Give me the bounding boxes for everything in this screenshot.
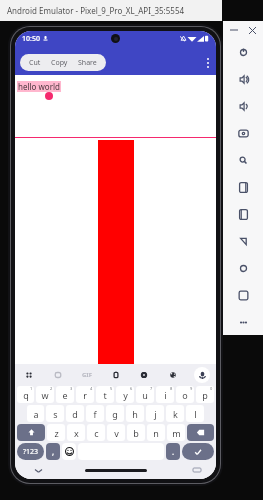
button[interactable]: n — [147, 424, 165, 441]
button[interactable]: Cut — [24, 56, 46, 70]
button[interactable]: More — [223, 309, 263, 335]
staticText: 8 — [170, 386, 173, 391]
button[interactable]: i — [156, 386, 174, 403]
button[interactable]: Rotate right — [223, 201, 263, 228]
button[interactable]: More options — [207, 58, 209, 68]
button[interactable]: h — [126, 405, 144, 422]
button[interactable]: x — [67, 424, 85, 441]
button[interactable]: Theme — [165, 367, 181, 383]
staticText: 7 — [150, 386, 153, 391]
staticText: Android Emulator - Pixel_9_Pro_XL_API_35… — [7, 5, 185, 16]
staticText: l — [194, 408, 197, 420]
button[interactable]: Settings — [136, 367, 152, 383]
button[interactable]: a — [27, 405, 44, 422]
button[interactable]: Emoji — [62, 443, 76, 460]
staticText: 4 — [90, 386, 93, 391]
staticText: k — [173, 408, 178, 420]
button[interactable]: Back — [223, 228, 263, 255]
button[interactable]: Switch keyboard — [192, 465, 202, 475]
staticText: Copy — [51, 58, 68, 68]
button[interactable]: m — [167, 424, 185, 441]
button[interactable]: k — [166, 405, 184, 422]
staticText: 5 — [110, 386, 113, 391]
staticText: f — [93, 408, 97, 420]
button[interactable]: l — [186, 405, 204, 422]
staticText: Share — [78, 58, 97, 68]
staticText: 2 — [50, 386, 53, 391]
staticText: p — [202, 389, 208, 401]
button[interactable]: Copy — [46, 56, 73, 70]
button[interactable]: f — [86, 405, 104, 422]
button[interactable]: Take screenshot — [223, 120, 263, 147]
staticText: o — [182, 389, 188, 401]
staticText: 3 — [70, 386, 73, 391]
staticText: . — [172, 446, 175, 457]
button[interactable]: Minimize — [228, 24, 240, 36]
staticText: , — [52, 446, 55, 457]
button[interactable]: Home — [223, 255, 263, 282]
button[interactable]: d — [66, 405, 84, 422]
button[interactable]: ?123 — [17, 443, 44, 460]
button[interactable]: b — [127, 424, 145, 441]
button[interactable]: j — [146, 405, 164, 422]
staticText: g — [112, 408, 118, 420]
button[interactable]: y — [116, 386, 134, 403]
staticText: q — [23, 389, 29, 401]
button[interactable]: Enter — [182, 443, 214, 460]
button[interactable]: Rotate left — [223, 174, 263, 201]
button[interactable]: Clipboard — [108, 367, 124, 383]
button[interactable]: Volume up — [223, 66, 263, 93]
button[interactable]: , — [46, 443, 60, 460]
button[interactable]: s — [46, 405, 64, 422]
staticText: h — [132, 408, 138, 420]
button[interactable]: . — [166, 443, 180, 460]
button[interactable]: u — [136, 386, 154, 403]
button[interactable]: Zoom — [223, 147, 263, 174]
staticText: 1 — [30, 386, 33, 391]
staticText: GIF — [82, 371, 92, 379]
button[interactable]: o — [176, 386, 194, 403]
button[interactable]: Share — [73, 56, 102, 70]
button[interactable]: Hide keyboard — [33, 465, 43, 475]
button[interactable]: p — [196, 386, 214, 403]
button[interactable]: Selection handle — [45, 92, 53, 100]
staticText: v — [114, 427, 119, 439]
button[interactable]: Backspace — [187, 424, 214, 441]
button[interactable]: Close — [246, 24, 258, 36]
staticText: u — [142, 389, 148, 401]
button[interactable]: GIF — [79, 367, 95, 383]
button[interactable]: Overview — [223, 282, 263, 309]
staticText: r — [83, 389, 87, 401]
button[interactable]: Power — [223, 39, 263, 66]
staticText: y — [123, 389, 128, 401]
button[interactable]: r — [76, 386, 94, 403]
staticText: b — [133, 427, 139, 439]
button[interactable]: w — [36, 386, 54, 403]
button[interactable]: v — [107, 424, 125, 441]
staticText: 9 — [190, 386, 193, 391]
button[interactable]: g — [106, 405, 124, 422]
staticText: c — [94, 427, 99, 439]
staticText: hello world — [18, 81, 60, 92]
button[interactable]: Stickers — [50, 367, 66, 383]
staticText: n — [153, 427, 159, 439]
staticText: i — [164, 389, 167, 401]
staticText: Cut — [29, 58, 41, 68]
button[interactable]: c — [87, 424, 105, 441]
button[interactable]: t — [96, 386, 114, 403]
staticText: s — [53, 408, 58, 420]
staticText: t — [103, 389, 107, 401]
button[interactable]: e — [56, 386, 74, 403]
staticText: 10:50 — [22, 34, 40, 44]
button[interactable]: q — [17, 386, 34, 403]
staticText: x — [74, 427, 79, 439]
button[interactable]: Shift — [17, 424, 45, 441]
button[interactable]: Voice input — [194, 367, 210, 383]
staticText: w — [41, 389, 49, 401]
button[interactable]: Apps — [21, 367, 37, 383]
staticText: ?123 — [23, 447, 39, 457]
button[interactable]: z — [47, 424, 65, 441]
button[interactable]: Volume down — [223, 93, 263, 120]
staticText: d — [72, 408, 78, 420]
